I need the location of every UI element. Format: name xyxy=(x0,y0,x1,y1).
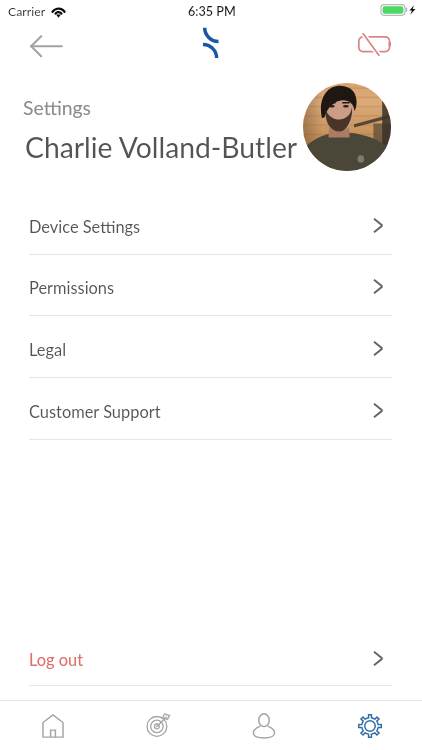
button[interactable]: Home xyxy=(0,701,105,750)
button[interactable]: Back xyxy=(18,25,62,67)
button[interactable]: Battery off xyxy=(352,25,396,67)
button[interactable]: Permissions xyxy=(0,254,422,316)
staticText: 6:35 PM xyxy=(188,4,236,19)
staticText: Settings xyxy=(23,96,91,119)
button[interactable]: Profile xyxy=(211,701,316,750)
button[interactable]: Settings xyxy=(317,701,422,750)
button[interactable]: Customer Support xyxy=(0,378,422,440)
button[interactable]: Legal xyxy=(0,316,422,378)
staticText: Log out xyxy=(29,650,84,670)
button[interactable]: Log out xyxy=(0,624,422,686)
staticText: Carrier xyxy=(8,4,46,19)
button[interactable]: Device Settings xyxy=(0,193,422,255)
staticText: Permissions xyxy=(29,278,115,298)
staticText: Customer Support xyxy=(29,402,161,422)
staticText: Device Settings xyxy=(29,217,141,237)
staticText: Charlie Volland-Butler xyxy=(25,130,298,164)
button[interactable]: Activity xyxy=(106,701,211,750)
staticText: Legal xyxy=(29,340,67,360)
